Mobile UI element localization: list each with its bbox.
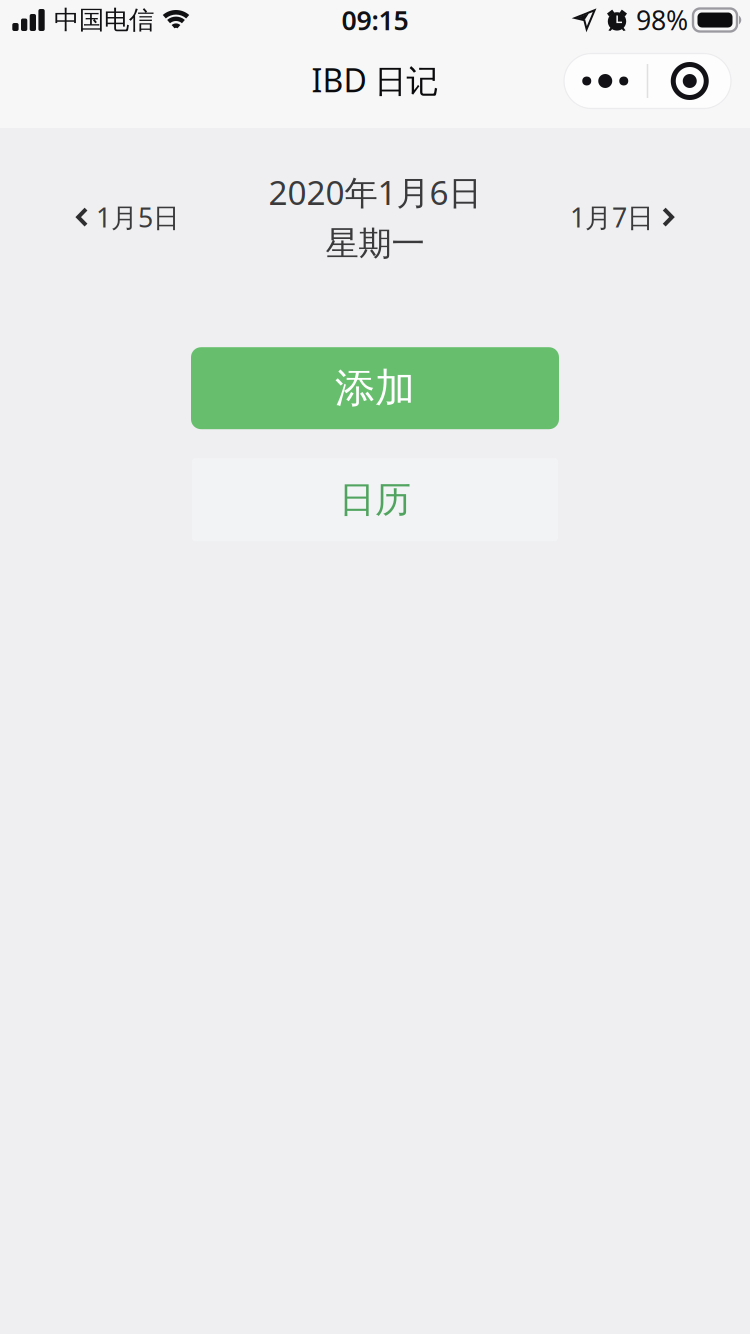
staticText: 日历	[339, 478, 411, 522]
button[interactable]: More options	[564, 53, 647, 108]
staticText: 1月5日	[96, 199, 180, 235]
button[interactable]: 日历	[192, 458, 558, 541]
button[interactable]: Close mini program	[648, 53, 731, 108]
staticText: 星期一	[325, 223, 424, 264]
button[interactable]: Previous day, 1月5日	[66, 185, 190, 249]
staticText: 09:15	[341, 2, 408, 38]
staticText: 1月7日	[570, 199, 654, 235]
staticText: 98%	[636, 2, 688, 38]
staticText: 2020年1月6日	[268, 170, 481, 214]
staticText: 中国电信	[54, 4, 154, 35]
staticText: 添加	[335, 364, 415, 413]
button[interactable]: 添加	[191, 347, 559, 429]
button[interactable]: Next day, 1月7日	[560, 185, 684, 249]
staticText: IBD 日记	[311, 59, 438, 101]
